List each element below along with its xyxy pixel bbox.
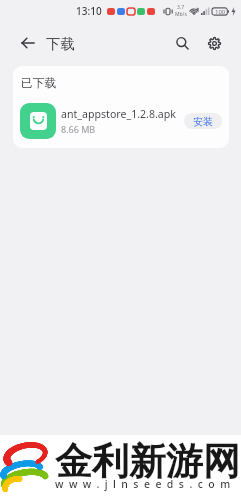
button[interactable]: 安装 — [184, 113, 222, 129]
staticText: 13:10 — [76, 4, 102, 18]
staticText: Mb/s — [175, 11, 187, 18]
staticText: 下载 — [46, 35, 75, 53]
staticText: 8.66 MB — [61, 123, 96, 135]
staticText: 金利新游网 — [55, 438, 240, 485]
staticText: www.jlnseeds.com — [55, 477, 236, 491]
staticText: 已下载 — [21, 76, 57, 91]
button[interactable]: Search — [168, 29, 196, 57]
staticText: ant_appstore_1.2.8.apk — [61, 107, 176, 121]
button[interactable]: Back — [14, 29, 42, 57]
button[interactable]: Settings — [200, 29, 228, 57]
staticText: 3.7 — [177, 4, 185, 11]
staticText: 100 — [215, 8, 226, 16]
staticText: 安装 — [193, 115, 213, 128]
